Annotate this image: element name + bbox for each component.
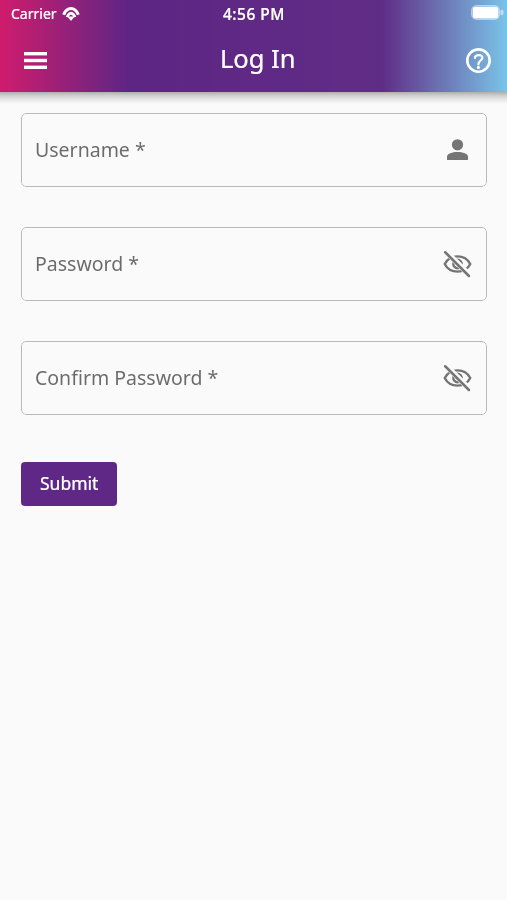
staticText: Carrier [11,4,57,23]
staticText: Password * [35,250,140,277]
staticText: Log In [220,41,296,76]
staticText: Confirm Password * [35,364,219,391]
staticText: 4:56 PM [223,3,286,24]
button[interactable]: Password * [21,227,487,301]
button[interactable]: Submit [21,462,117,506]
button[interactable]: Username * [21,113,487,187]
staticText: Username * [35,136,146,163]
button[interactable]: Confirm Password * [21,341,487,415]
button[interactable]: Menu [11,36,59,84]
button[interactable]: Help [454,36,502,84]
staticText: Submit [40,471,99,495]
